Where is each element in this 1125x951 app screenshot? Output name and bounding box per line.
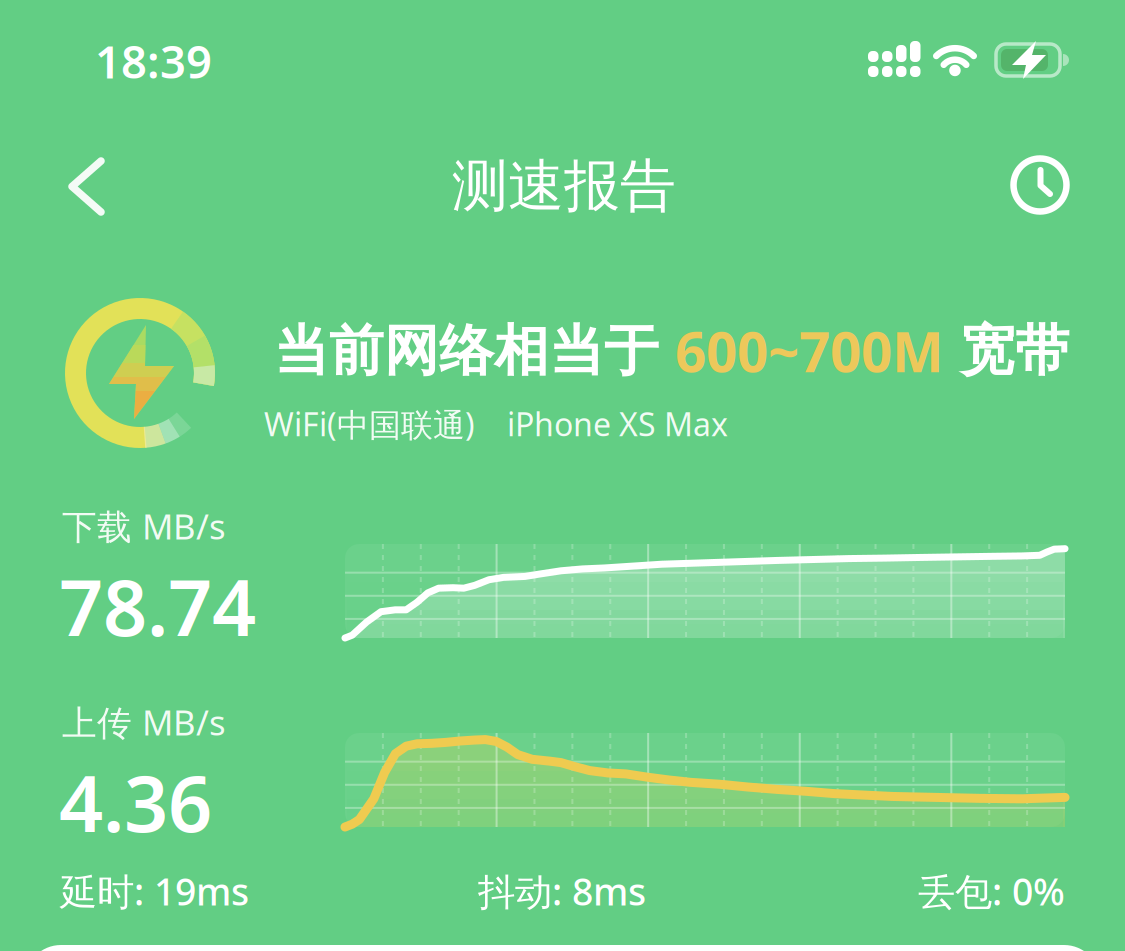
staticText: WiFi(中国联通) iPhone XS Max bbox=[264, 403, 728, 445]
staticText: 丢包: 0% bbox=[918, 866, 1065, 916]
staticText: 延时: 19ms bbox=[60, 866, 249, 916]
staticText: 4.36 bbox=[59, 751, 212, 853]
staticText: 600~700M bbox=[675, 315, 944, 387]
staticText: 上传 MB/s bbox=[62, 699, 226, 745]
staticText: 下载 MB/s bbox=[62, 503, 226, 549]
button[interactable]: 返回 bbox=[0, 0, 1125, 951]
staticText: 18:39 bbox=[95, 31, 212, 91]
staticText: 78.74 bbox=[59, 555, 256, 657]
staticText: 宽带 bbox=[944, 317, 1070, 384]
staticText: 当前网络相当于 bbox=[274, 317, 675, 384]
button[interactable]: 历史记录 bbox=[0, 0, 1125, 951]
staticText: 抖动: 8ms bbox=[478, 866, 646, 916]
staticText: 测速报告 bbox=[452, 152, 676, 220]
